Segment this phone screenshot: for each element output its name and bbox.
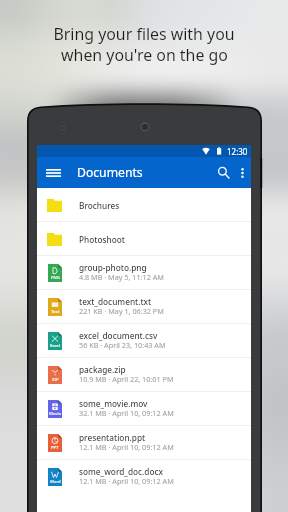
button[interactable]: Word	[37, 460, 251, 494]
staticText: group-photo.png	[79, 262, 147, 273]
staticText: Excel	[50, 343, 61, 349]
button[interactable]: Search	[210, 157, 238, 188]
button[interactable]: Excel	[37, 324, 251, 358]
staticText: Movie	[49, 411, 62, 417]
staticText: text_document.txt	[79, 296, 152, 307]
staticText: 12.1 MB · April 10, 09:12 AM	[79, 442, 174, 452]
staticText: package.zip	[79, 364, 126, 375]
staticText: ZIP	[52, 377, 59, 383]
staticText: PNG	[51, 275, 60, 281]
staticText: 12:30	[227, 146, 248, 157]
staticText: some_word_doc.docx	[79, 466, 164, 477]
button[interactable]: More options	[234, 157, 251, 188]
staticText: 221 KB · May 1, 06:32 PM	[79, 306, 164, 316]
button[interactable]: PPT	[37, 426, 251, 460]
staticText: excel_document.csv	[79, 330, 158, 341]
staticText: 4.8 MB · May 5, 11:12 AM	[79, 272, 164, 282]
button[interactable]: Brochures	[37, 188, 251, 222]
staticText: Brochures	[79, 200, 120, 211]
button[interactable]: Movie	[37, 392, 251, 426]
button[interactable]: ZIP	[37, 358, 251, 392]
staticText: 32.1 MB · April 10, 09:12 AM	[79, 408, 174, 418]
staticText: some_movie.mov	[79, 398, 148, 409]
staticText: 56 KB · April 23, 10:43 AM	[79, 340, 166, 350]
staticText: Bring your files with you	[53, 23, 235, 45]
staticText: 10.9 MB · April 22, 10:01 PM	[79, 374, 174, 384]
staticText: Documents	[77, 164, 143, 181]
staticText: 12.1 MB · April 10, 09:12 AM	[79, 476, 174, 486]
button[interactable]: PNG	[37, 256, 251, 290]
staticText: PPT	[51, 445, 59, 451]
staticText: Text	[51, 309, 60, 315]
button[interactable]: Text	[37, 290, 251, 324]
staticText: Word	[50, 479, 61, 485]
staticText: when you're on the go	[61, 44, 228, 66]
staticText: presentation.ppt	[79, 432, 146, 443]
button[interactable]: Photoshoot	[37, 222, 251, 256]
button[interactable]: Navigation menu	[39, 157, 68, 188]
staticText: Photoshoot	[79, 234, 125, 245]
